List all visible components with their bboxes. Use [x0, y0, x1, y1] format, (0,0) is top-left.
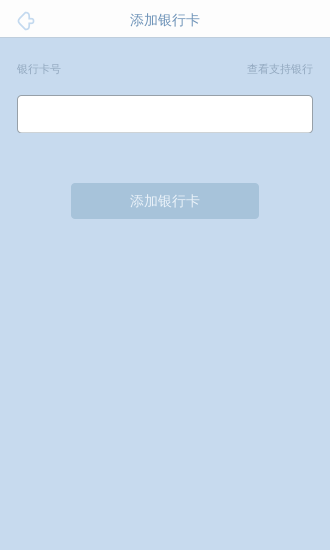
staticText: 添加银行卡 [130, 11, 200, 29]
button[interactable]: 添加银行卡 [71, 183, 259, 219]
button[interactable]: 查看支持银行 [247, 62, 313, 76]
staticText: 银行卡号 [17, 62, 61, 76]
staticText: 查看支持银行 [247, 62, 313, 76]
staticText: 添加银行卡 [130, 192, 200, 210]
button[interactable]: Back [0, 0, 47, 38]
